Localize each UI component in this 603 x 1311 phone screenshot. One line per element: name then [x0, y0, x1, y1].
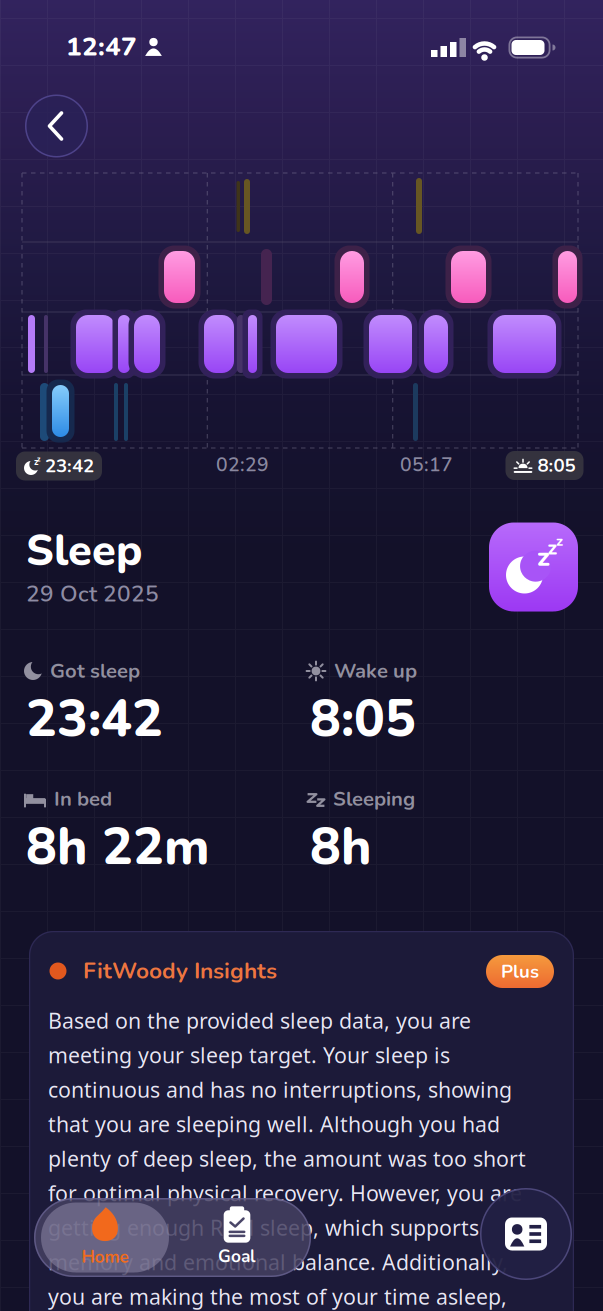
staticText: 8h: [310, 812, 372, 882]
staticText: 8h 22m: [26, 812, 210, 882]
staticText: plenty of deep sleep, the amount was too…: [48, 1144, 526, 1173]
staticText: 23:42: [26, 684, 163, 754]
staticText: 05:17: [400, 452, 453, 478]
staticText: z: [37, 454, 41, 464]
staticText: Sleeping: [333, 785, 415, 813]
staticText: z: [547, 534, 557, 562]
staticText: 23:42: [45, 453, 94, 479]
button[interactable]: Goal: [177, 1201, 297, 1273]
staticText: Plus: [501, 959, 539, 984]
staticText: 12:47: [66, 29, 137, 65]
staticText: FitWoody Insights: [83, 955, 277, 986]
staticText: Got sleep: [50, 657, 140, 685]
staticText: Sleep: [26, 521, 142, 580]
button[interactable]: Back: [25, 94, 88, 157]
staticText: 8:05: [537, 453, 575, 478]
staticText: 8:05: [310, 684, 416, 754]
staticText: z: [556, 531, 563, 551]
staticText: 02:29: [216, 452, 269, 478]
staticText: Goal: [218, 1245, 256, 1268]
staticText: z: [34, 456, 38, 468]
staticText: getting enough REM sleep, which supports: [48, 1213, 479, 1242]
staticText: continuous and has no interruptions, sho…: [48, 1075, 512, 1104]
staticText: memory and emotional balance. Additional…: [48, 1248, 508, 1276]
staticText: that you are sleeping well. Although you…: [48, 1110, 500, 1138]
staticText: Based on the provided sleep data, you ar…: [48, 1006, 471, 1035]
button[interactable]: Plus: [486, 955, 554, 988]
staticText: 29 Oct 2025: [26, 578, 159, 609]
staticText: meeting your sleep target. Your sleep is: [48, 1041, 450, 1069]
button[interactable]: Contacts: [480, 1188, 572, 1280]
staticText: for optimal physical recovery. However, …: [48, 1179, 522, 1207]
button[interactable]: Home: [41, 1201, 169, 1273]
staticText: Wake up: [334, 657, 417, 685]
staticText: z: [537, 539, 550, 575]
staticText: In bed: [54, 785, 112, 813]
staticText: Home: [81, 1245, 128, 1269]
staticText: you are making the most of your time asl…: [48, 1282, 507, 1311]
